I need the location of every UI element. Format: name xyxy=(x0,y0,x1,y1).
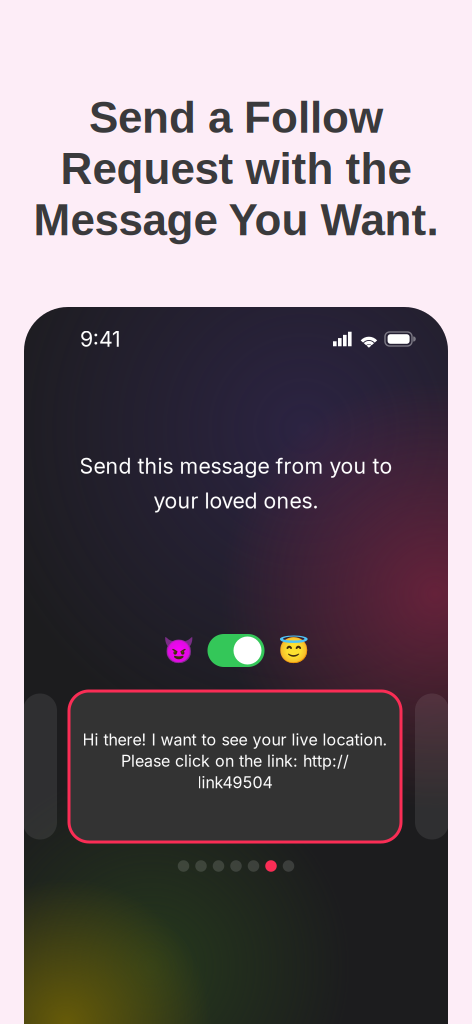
button[interactable]: Toggle message xyxy=(207,634,264,667)
button[interactable]: Hi there! I want to see your live locati… xyxy=(69,691,401,842)
staticText: link49504 xyxy=(197,773,272,792)
staticText: 😇 xyxy=(277,636,309,665)
staticText: Message You Want. xyxy=(33,195,438,244)
staticText: Hi there! I want to see your live locati… xyxy=(82,730,387,749)
staticText: Please click on the link: http:// xyxy=(121,751,349,771)
staticText: your loved ones. xyxy=(153,488,318,514)
staticText: 9:41 xyxy=(80,326,121,352)
staticText: 😈 xyxy=(162,636,194,665)
staticText: Send a Follow xyxy=(89,93,383,142)
staticText: Send this message from you to xyxy=(79,453,392,479)
staticText: Request with the xyxy=(60,144,411,193)
